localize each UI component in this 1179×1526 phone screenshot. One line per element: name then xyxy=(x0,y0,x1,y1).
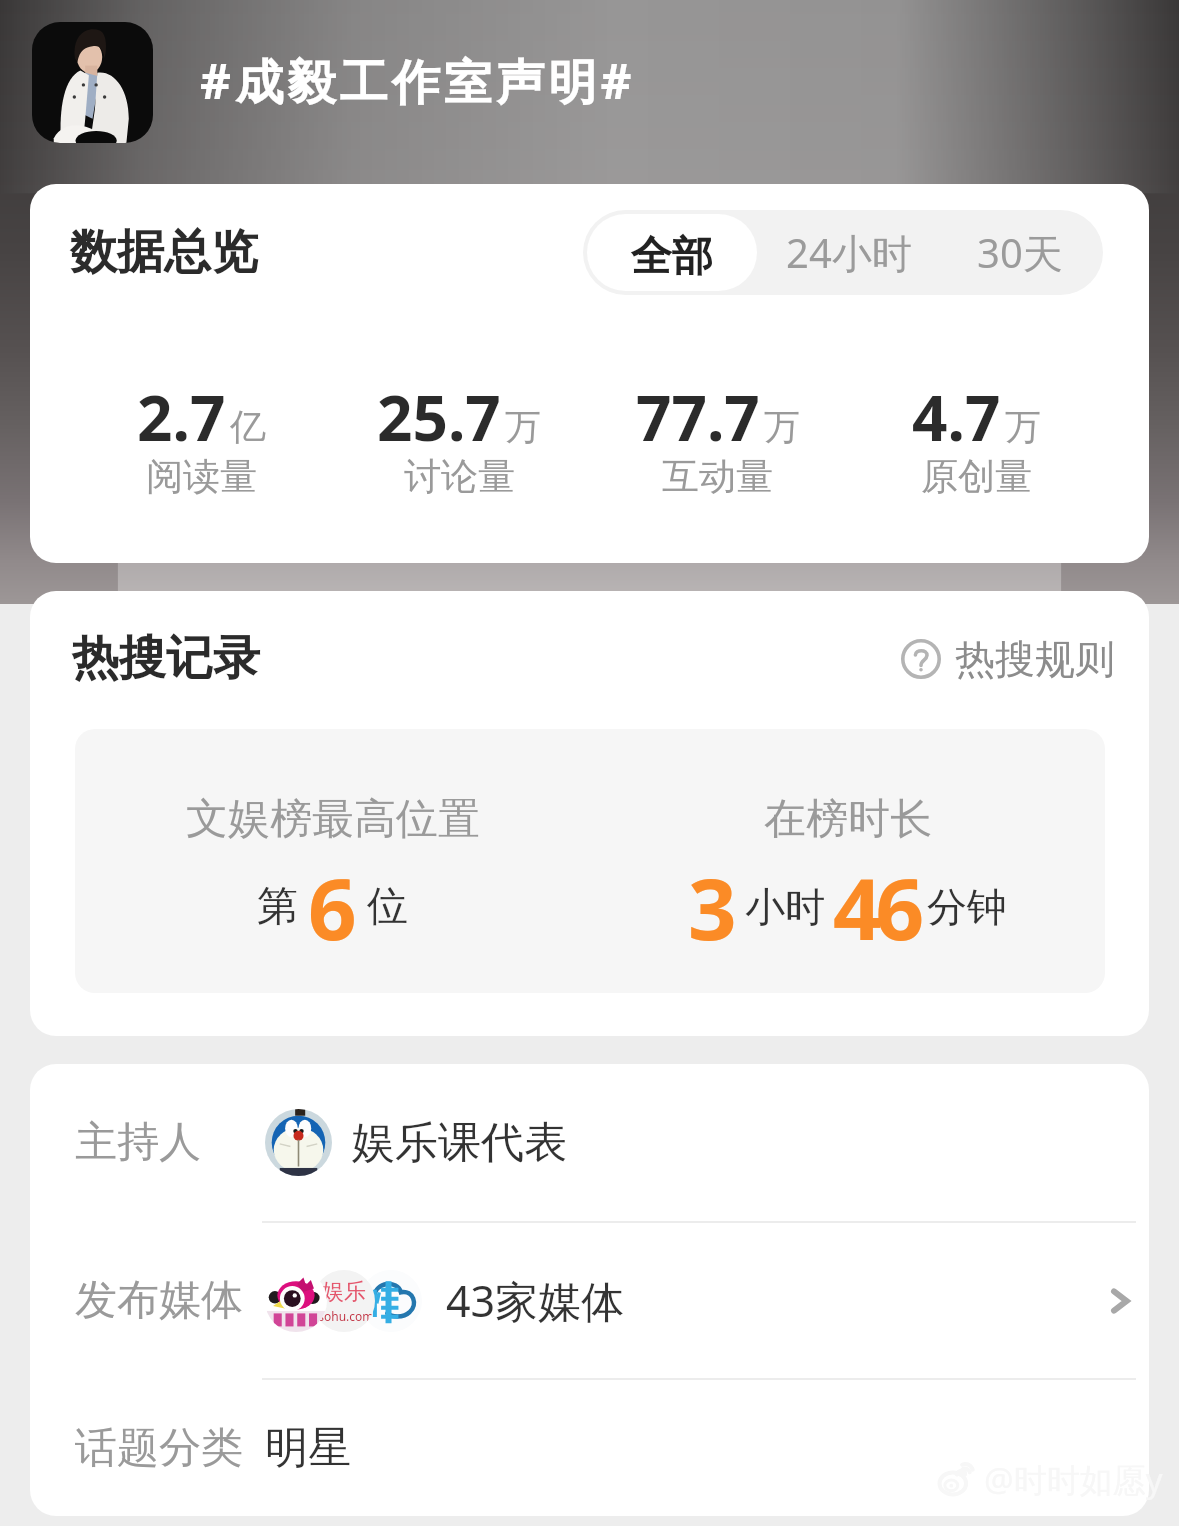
staticText: #成毅工作室声明# xyxy=(200,48,636,114)
button[interactable]: 主持人 xyxy=(30,1064,1149,1221)
staticText: 77.7 xyxy=(636,375,760,459)
button[interactable]: Topic avatar xyxy=(32,22,153,143)
staticText: 2.7 xyxy=(137,375,226,459)
staticText: 万 xyxy=(764,404,800,449)
staticText: 万 xyxy=(505,404,541,449)
staticText: 25.7 xyxy=(377,375,501,459)
button[interactable]: Hot search rules help xyxy=(897,630,1119,688)
staticText: 热搜规则 xyxy=(955,634,1115,684)
staticText: 热搜记录 xyxy=(72,629,260,688)
staticText: 互动量 xyxy=(662,453,773,500)
staticText: 主持人 xyxy=(75,1116,201,1169)
staticText: 万 xyxy=(1005,404,1041,449)
button[interactable]: 77.7 xyxy=(588,375,847,507)
staticText: 讨论量 xyxy=(404,453,515,500)
staticText: 43家媒体 xyxy=(446,1271,625,1330)
staticText: 第 xyxy=(257,881,298,933)
staticText: 阅读量 xyxy=(146,453,257,500)
staticText: 24小时 xyxy=(786,225,912,280)
button[interactable]: 话题分类 xyxy=(30,1380,1149,1516)
other: Hot search rules help xyxy=(901,639,941,679)
staticText: 30天 xyxy=(977,225,1063,280)
button[interactable]: 24小时 xyxy=(761,210,937,295)
staticText: 位 xyxy=(367,881,408,933)
staticText: 小时 xyxy=(745,882,825,932)
button[interactable]: 全部 xyxy=(587,214,757,291)
staticText: 原创量 xyxy=(921,453,1032,500)
staticText: .sohu.com xyxy=(315,1308,374,1324)
button[interactable]: 2.7 xyxy=(72,375,330,507)
staticText: 明星 xyxy=(265,1421,351,1475)
staticText: 分钟 xyxy=(927,882,1007,932)
staticText: 3 xyxy=(688,849,737,965)
button[interactable]: 发布媒体 xyxy=(30,1223,1149,1378)
staticText: 娱乐课代表 xyxy=(352,1116,567,1170)
staticText: 话题分类 xyxy=(75,1422,243,1475)
staticText: @时时如愿y xyxy=(984,1457,1163,1502)
staticText: 4.7 xyxy=(912,375,1001,459)
button[interactable]: 30天 xyxy=(937,210,1103,295)
staticText: 46 xyxy=(833,849,919,965)
staticText: 数据总览 xyxy=(70,223,258,282)
staticText: 亿 xyxy=(230,404,266,449)
staticText: 在榜时长 xyxy=(764,793,932,846)
button[interactable]: 4.7 xyxy=(847,375,1106,507)
staticText: 发布媒体 xyxy=(75,1274,243,1327)
button[interactable]: 25.7 xyxy=(330,375,588,507)
staticText: 全部 xyxy=(631,231,713,283)
staticText: 6 xyxy=(308,849,357,965)
staticText: 文娱榜最高位置 xyxy=(186,793,480,846)
staticText: 娱乐 xyxy=(322,1278,366,1306)
